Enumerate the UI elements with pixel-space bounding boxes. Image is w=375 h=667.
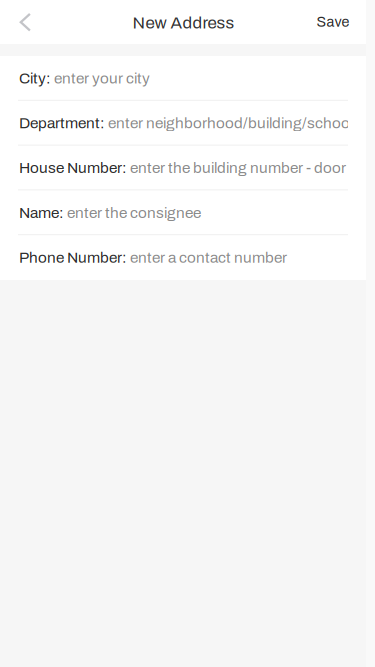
staticText: enter a contact number (127, 249, 287, 266)
staticText: House Number: (19, 160, 127, 176)
staticText: Phone Number: (19, 249, 127, 266)
button[interactable]: Back (0, 0, 48, 44)
button[interactable]: Name: (0, 190, 366, 235)
staticText: enter the consignee (64, 204, 201, 221)
staticText: enter the building number - door number (127, 160, 375, 176)
staticText: New Address (132, 13, 234, 32)
button[interactable]: Department: (0, 101, 366, 146)
button[interactable]: City: (0, 56, 366, 101)
staticText: Name: (19, 204, 64, 221)
staticText: City: (19, 70, 51, 87)
button[interactable]: Phone Number: (0, 235, 366, 280)
button[interactable]: Save (316, 0, 366, 44)
staticText: enter your city (51, 70, 150, 87)
staticText: Save (316, 14, 349, 30)
button[interactable]: House Number: (0, 146, 366, 190)
staticText: Department: (19, 115, 105, 132)
staticText: enter neighborhood/building/school (105, 115, 353, 132)
